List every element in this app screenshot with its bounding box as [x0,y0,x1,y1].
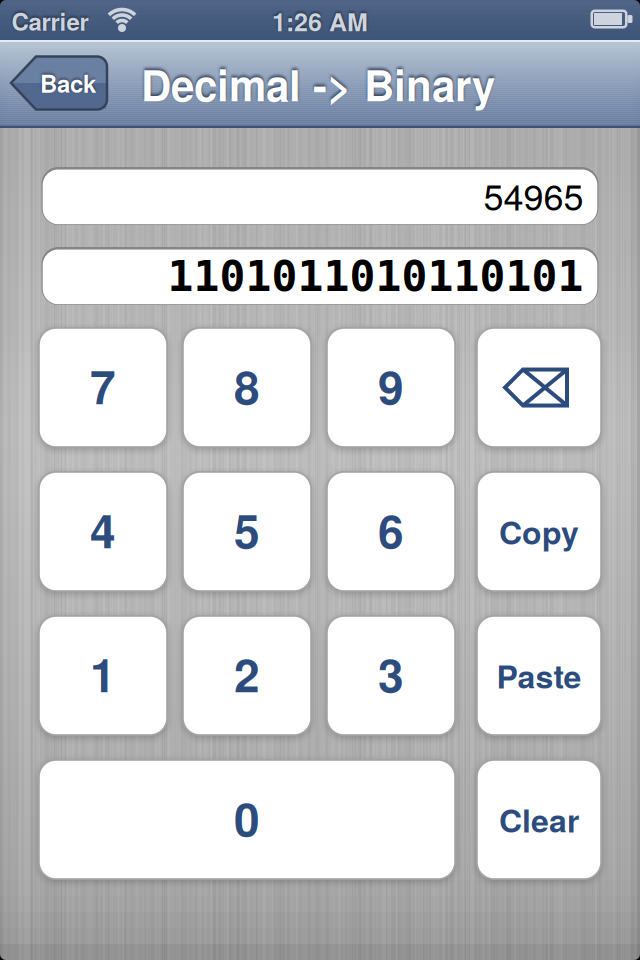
staticText: 3 [378,641,404,706]
button[interactable]: Paste [476,615,602,736]
staticText: 5 [234,497,260,562]
button[interactable]: Back [10,55,108,111]
staticText: 1 [90,641,116,706]
staticText: Clear [499,797,579,842]
button[interactable]: 5 [182,471,312,592]
button[interactable]: Copy [476,471,602,592]
staticText: 0 [234,785,260,850]
staticText: Back [40,66,96,100]
button[interactable]: 7 [38,327,168,448]
staticText: Paste [496,653,581,698]
button[interactable]: 3 [326,615,456,736]
staticText: 9 [378,353,404,418]
staticText: 7 [90,353,116,418]
staticText: Decimal -> Binary [141,54,495,114]
staticText: 1:26 AM [272,3,368,39]
button[interactable]: 4 [38,471,168,592]
button[interactable]: Clear [476,759,602,880]
staticText: 8 [234,353,260,418]
button[interactable]: 6 [326,471,456,592]
staticText: 2 [234,641,260,706]
button[interactable]: 8 [182,327,312,448]
button[interactable]: Delete [476,327,602,448]
staticText: Copy [499,509,579,554]
button[interactable]: 0 [38,759,456,880]
staticText: 4 [90,497,116,562]
staticText: 54965 [483,169,583,221]
button[interactable]: 9 [326,327,456,448]
button[interactable]: 2 [182,615,312,736]
staticText: Carrier [11,4,88,38]
button[interactable]: 1 [38,615,168,736]
staticText: 1101011010110101 [167,251,583,301]
staticText: 6 [378,497,404,562]
